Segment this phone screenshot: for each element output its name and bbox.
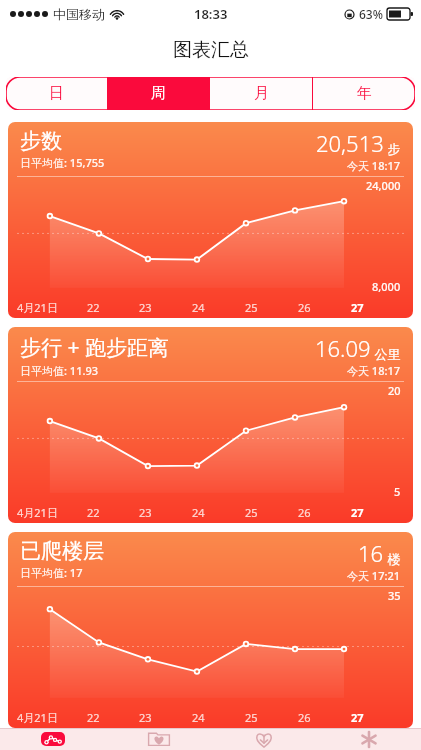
staticText: 63% [359, 6, 383, 22]
button[interactable]: 周 [108, 77, 209, 110]
staticText: 公里 [371, 345, 401, 363]
staticText: 27 [351, 505, 364, 520]
button[interactable]: 医疗急救卡 [316, 729, 421, 750]
staticText: 4月21日 [17, 710, 58, 725]
staticText: 周 [151, 84, 166, 103]
staticText: 5 [394, 484, 401, 499]
staticText: 日平均值: 17 [20, 565, 83, 580]
button[interactable]: 年 [313, 77, 415, 110]
staticText: 23 [139, 300, 152, 315]
staticText: 4月21日 [17, 505, 58, 520]
button[interactable]: 步行 + 跑步距离 [8, 327, 413, 523]
staticText: 24 [192, 710, 205, 725]
staticText: 24 [192, 505, 205, 520]
staticText: 25 [245, 505, 258, 520]
staticText: 8,000 [372, 279, 401, 294]
staticText: 月 [254, 84, 269, 103]
button[interactable]: 数据来源 [211, 729, 316, 750]
staticText: 年 [357, 84, 372, 103]
staticText: 图表汇总 [173, 38, 249, 62]
button[interactable]: 月 [210, 77, 312, 110]
staticText: 22 [87, 505, 100, 520]
staticText: 20,513 [316, 128, 384, 158]
staticText: 步 [384, 140, 401, 158]
staticText: 26 [298, 300, 311, 315]
staticText: 22 [87, 300, 100, 315]
staticText: 步数 [20, 128, 62, 154]
staticText: 中国移动 [53, 6, 105, 22]
staticText: 步行 + 跑步距离 [20, 333, 169, 362]
staticText: 日 [49, 84, 64, 103]
staticText: 23 [139, 710, 152, 725]
button[interactable]: 图表汇总 [0, 729, 106, 750]
staticText: 22 [87, 710, 100, 725]
staticText: 今天 18:17 [347, 363, 401, 378]
staticText: 25 [245, 710, 258, 725]
staticText: 4月21日 [17, 300, 58, 315]
staticText: 日平均值: 15,755 [20, 155, 105, 170]
staticText: 今天 17:21 [347, 568, 401, 583]
staticText: 24,000 [366, 178, 401, 193]
staticText: 楼 [384, 550, 401, 568]
button[interactable]: 日 [6, 77, 107, 110]
staticText: 日平均值: 11.93 [20, 363, 99, 378]
button[interactable]: 步数 [8, 122, 413, 318]
staticText: 已爬楼层 [20, 538, 104, 564]
staticText: 35 [388, 588, 401, 603]
staticText: 23 [139, 505, 152, 520]
staticText: 18:33 [194, 5, 228, 23]
button[interactable]: 健康数据 [106, 729, 211, 750]
staticText: 20 [388, 383, 401, 398]
staticText: 26 [298, 710, 311, 725]
staticText: 今天 18:17 [347, 158, 401, 173]
staticText: 27 [351, 300, 364, 315]
staticText: 25 [245, 300, 258, 315]
staticText: 16.09 [315, 333, 371, 363]
staticText: 16 [358, 538, 384, 568]
staticText: 27 [351, 710, 364, 725]
staticText: 26 [298, 505, 311, 520]
button[interactable]: 已爬楼层 [8, 532, 413, 728]
staticText: 24 [192, 300, 205, 315]
